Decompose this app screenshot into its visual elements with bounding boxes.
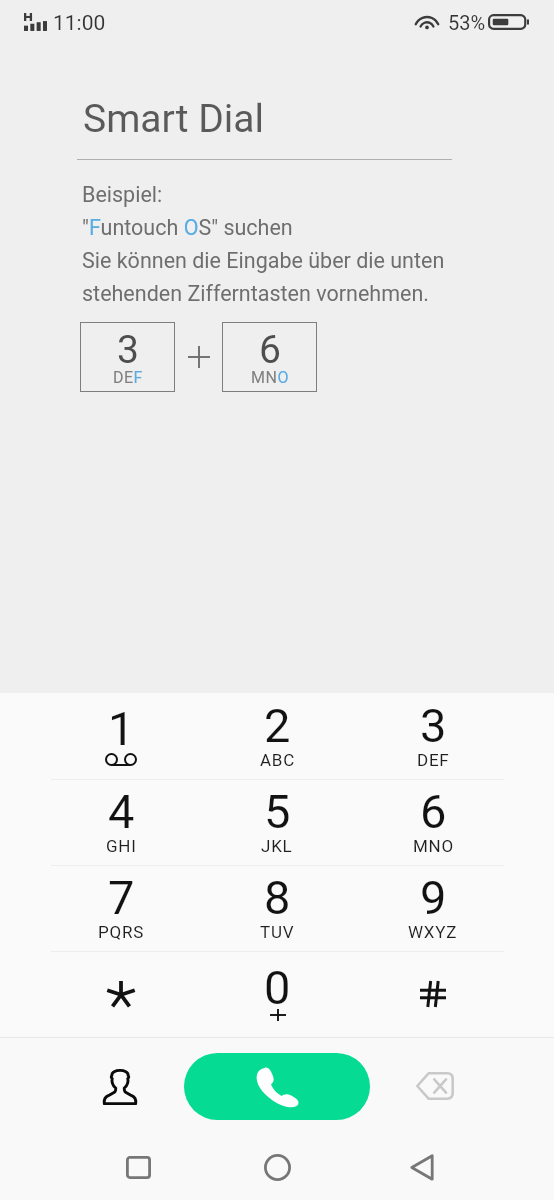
button[interactable]: 9 [355, 866, 511, 951]
button[interactable]: Home [247, 1134, 307, 1194]
staticText: TUV [260, 922, 295, 942]
staticText: GHI [106, 836, 137, 856]
staticText: 7 [108, 870, 135, 925]
staticText: 11:00 [53, 11, 106, 36]
staticText: PQRS [98, 922, 144, 942]
button[interactable]: Contacts [92, 1058, 148, 1114]
button[interactable] [43, 952, 199, 1037]
staticText: MNO [413, 836, 454, 856]
staticText: DEF [417, 750, 450, 770]
button[interactable]: 5 [199, 780, 355, 865]
staticText: 6 [420, 784, 447, 839]
button[interactable]: Backspace [407, 1058, 463, 1114]
button[interactable]: 3 [80, 322, 175, 392]
staticText: JKL [261, 836, 293, 856]
staticText: 3 [420, 698, 447, 753]
button[interactable]: 3 [355, 693, 511, 779]
button[interactable]: 2 [199, 693, 355, 779]
button[interactable]: 0 [199, 952, 355, 1037]
staticText: 5 [264, 784, 291, 839]
staticText: ABC [260, 750, 295, 770]
staticText: 53% [448, 11, 486, 34]
button[interactable] [355, 952, 511, 1037]
button[interactable]: 7 [43, 866, 199, 951]
staticText: stehenden Zifferntasten vornehmen. [82, 281, 429, 306]
staticText: MNO [251, 368, 289, 387]
staticText: Beispiel: [82, 182, 163, 207]
staticText: 0 [264, 960, 291, 1015]
staticText: 2 [264, 698, 291, 753]
button[interactable]: 1 [43, 693, 199, 779]
staticText: 8 [264, 870, 291, 925]
button[interactable]: 8 [199, 866, 355, 951]
staticText: 6 [259, 327, 281, 373]
staticText: 9 [420, 870, 447, 925]
button[interactable]: 4 [43, 780, 199, 865]
button[interactable]: Call [184, 1053, 370, 1120]
staticText: Smart Dial [83, 96, 264, 142]
button[interactable]: 6 [355, 780, 511, 865]
staticText: Sie können die Eingabe über die unten [82, 248, 445, 273]
staticText: 3 [117, 327, 139, 373]
button[interactable]: Recents [108, 1134, 168, 1194]
button[interactable]: Back [392, 1134, 452, 1194]
staticText: DEF [113, 368, 143, 387]
staticText: 1 [108, 701, 135, 756]
staticText: "Funtouch OS" suchen [82, 215, 293, 240]
button[interactable]: 6 [222, 322, 317, 392]
staticText: WXYZ [408, 922, 458, 942]
staticText: 4 [108, 784, 135, 839]
